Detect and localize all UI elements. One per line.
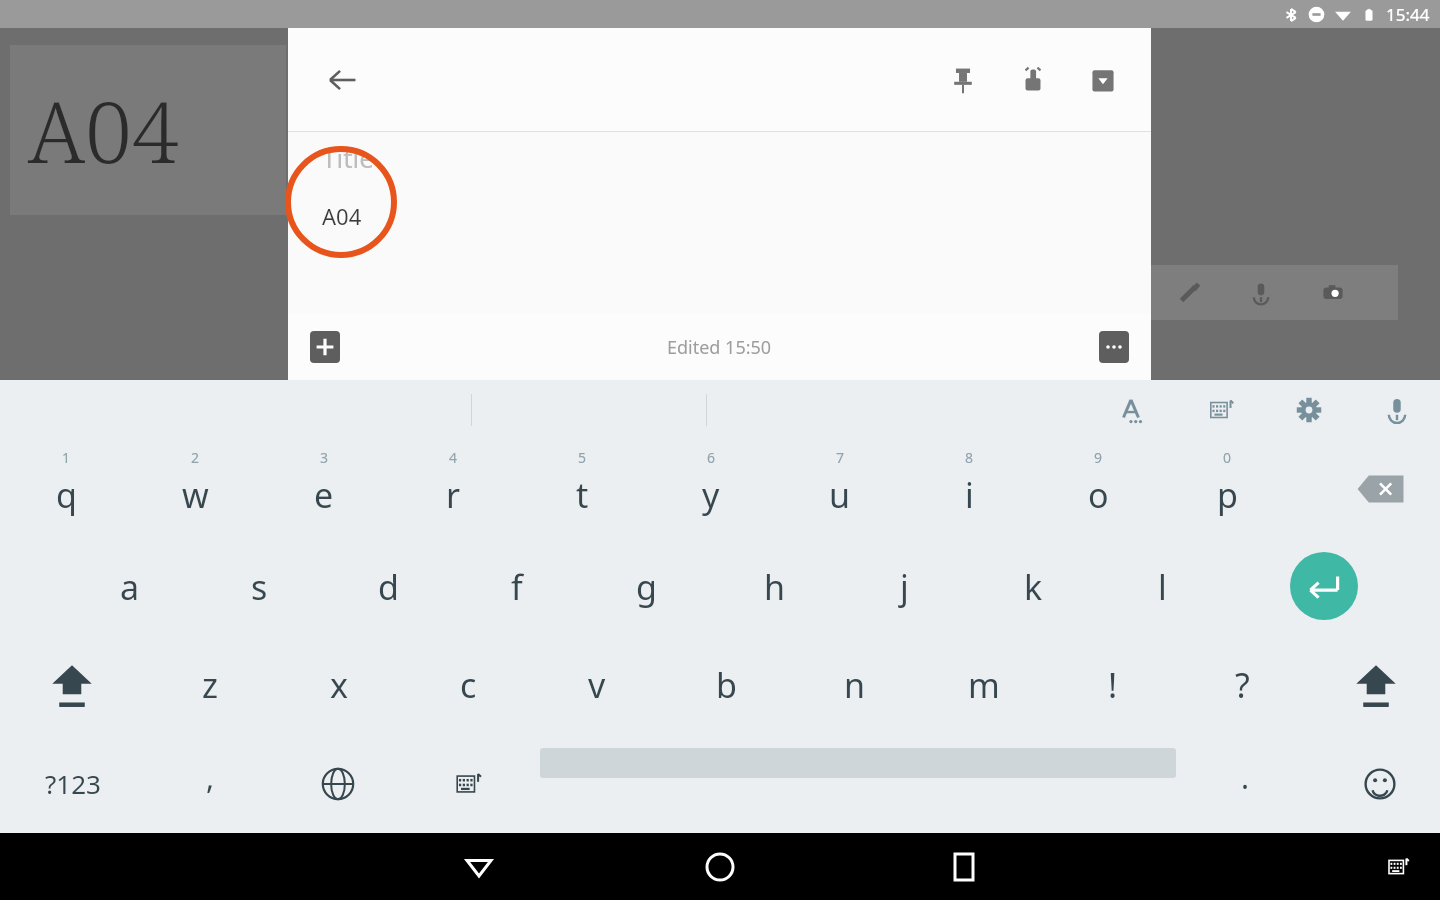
button[interactable]: Pin (941, 58, 985, 102)
staticText: 3 (320, 448, 329, 467)
button[interactable]: 9 (1040, 440, 1156, 538)
staticText: g (636, 564, 657, 610)
staticText: b (716, 662, 737, 708)
button[interactable]: Text suggestions (1116, 393, 1150, 427)
button[interactable]: Archive (1081, 58, 1125, 102)
button[interactable]: g (588, 538, 704, 636)
button[interactable]: 5 (524, 440, 640, 538)
staticText: y (702, 472, 720, 518)
button[interactable]: 0 (1169, 440, 1285, 538)
button[interactable]: 7 (782, 440, 898, 538)
staticText: . (1241, 757, 1250, 798)
staticText: o (1088, 472, 1109, 518)
staticText: n (844, 662, 866, 708)
staticText: p (1217, 472, 1238, 518)
button[interactable]: Enter (1290, 552, 1358, 620)
staticText: i (965, 472, 974, 518)
staticText: u (829, 472, 851, 518)
staticText: s (251, 564, 268, 610)
staticText: m (968, 662, 1000, 708)
button[interactable]: Back (447, 835, 511, 899)
button[interactable]: Reminder (1011, 58, 1055, 102)
staticText: r (446, 472, 461, 518)
staticText: Title (322, 140, 374, 175)
button[interactable]: z (152, 636, 268, 734)
button[interactable]: Recents (932, 835, 996, 899)
button[interactable]: Shift (18, 636, 126, 734)
button[interactable]: l (1104, 538, 1220, 636)
button[interactable]: , (155, 734, 265, 833)
button[interactable]: x (281, 636, 397, 734)
staticText: c (460, 662, 477, 708)
staticText: Edited 15:50 (667, 335, 772, 360)
staticText: 15:44 (1386, 3, 1430, 26)
button[interactable]: . (1195, 734, 1295, 833)
button[interactable]: Emoji (1330, 734, 1430, 833)
button[interactable]: Shift (1322, 636, 1430, 734)
staticText: 1 (62, 448, 71, 467)
staticText: h (764, 564, 786, 610)
button[interactable]: Backspace (1330, 440, 1430, 538)
staticText: 6 (707, 448, 716, 467)
button[interactable]: 2 (137, 440, 253, 538)
button[interactable]: More options (1099, 331, 1129, 363)
staticText: 5 (578, 448, 587, 467)
staticText: a (120, 564, 140, 610)
staticText: f (511, 564, 523, 610)
staticText: 7 (836, 448, 845, 467)
staticText: 2 (191, 448, 200, 467)
button[interactable]: m (926, 636, 1042, 734)
staticText: v (588, 662, 606, 708)
button[interactable]: s (201, 538, 317, 636)
button[interactable]: d (330, 538, 446, 636)
button[interactable]: 8 (911, 440, 1027, 538)
button[interactable]: ?123 (18, 734, 128, 833)
staticText: A04 (322, 201, 362, 231)
staticText: ?123 (45, 766, 101, 801)
button[interactable]: h (717, 538, 833, 636)
staticText: 4 (449, 448, 458, 467)
button[interactable]: Change language (285, 734, 391, 833)
button[interactable]: j (846, 538, 962, 636)
button[interactable]: n (797, 636, 913, 734)
button[interactable]: Add (310, 331, 340, 363)
button[interactable]: f (459, 538, 575, 636)
staticText: w (182, 472, 209, 518)
staticText: k (1024, 564, 1043, 610)
staticText: 0 (1223, 448, 1232, 467)
staticText: j (900, 564, 909, 610)
button[interactable]: Keyboard layout (1204, 393, 1238, 427)
button[interactable]: Switch keyboard (1370, 839, 1426, 895)
staticText: z (202, 662, 218, 708)
button[interactable]: ! (1055, 636, 1171, 734)
button[interactable]: 3 (266, 440, 382, 538)
button[interactable]: Home (688, 835, 752, 899)
staticText: 9 (1094, 448, 1103, 467)
button[interactable]: b (668, 636, 784, 734)
button[interactable]: a (72, 538, 188, 636)
staticText: e (314, 472, 334, 518)
button[interactable]: 6 (653, 440, 769, 538)
staticText: q (56, 472, 77, 518)
button[interactable]: Voice input (1380, 393, 1414, 427)
button[interactable]: Back (318, 56, 366, 104)
staticText: ? (1235, 662, 1250, 708)
button[interactable]: 1 (8, 440, 124, 538)
staticText: t (576, 472, 589, 518)
staticText: 8 (965, 448, 974, 467)
button[interactable]: v (539, 636, 655, 734)
staticText: ! (1108, 662, 1118, 708)
button[interactable]: k (975, 538, 1091, 636)
button[interactable]: ? (1184, 636, 1300, 734)
staticText: d (378, 564, 399, 610)
staticText: l (1158, 564, 1167, 610)
button[interactable]: Settings (1292, 393, 1326, 427)
button[interactable]: Keyboard layout (415, 734, 521, 833)
staticText: x (330, 662, 348, 708)
button[interactable]: 4 (395, 440, 511, 538)
button[interactable]: c (410, 636, 526, 734)
staticText: A04 (28, 73, 179, 187)
staticText: , (206, 757, 215, 798)
